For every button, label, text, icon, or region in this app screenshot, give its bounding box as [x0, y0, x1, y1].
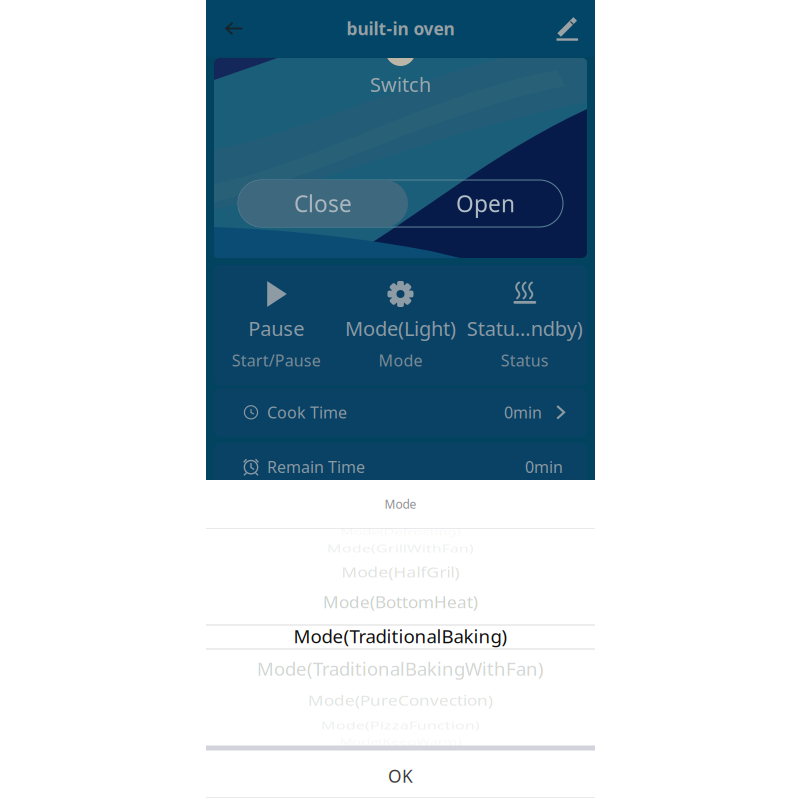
button[interactable]: Mode(Light): [338, 279, 463, 371]
staticText: Mode(KeepWarm): [339, 732, 461, 752]
staticText: Mode(TraditionalBaking): [293, 624, 507, 648]
staticText: Cook Time: [267, 402, 347, 423]
staticText: OK: [388, 764, 413, 787]
staticText: Statu…ndby): [467, 315, 583, 342]
staticText: built-in oven: [346, 17, 454, 40]
staticText: 0min: [525, 456, 563, 477]
staticText: Mode(PureConvection): [308, 688, 493, 711]
staticText: Remain Time: [267, 456, 365, 477]
staticText: Mode(HalfGril): [341, 560, 459, 583]
staticText: Mode(TraditionalBakingWithFan): [257, 657, 544, 681]
button[interactable]: Edit: [541, 0, 595, 57]
button[interactable]: Pause: [214, 279, 338, 371]
staticText: Open: [456, 188, 515, 218]
button[interactable]: OK: [206, 753, 595, 798]
staticText: Mode: [378, 350, 422, 371]
button[interactable]: Cook Time: [214, 388, 587, 437]
staticText: Pause: [248, 315, 304, 342]
staticText: Start/Pause: [232, 350, 321, 371]
staticText: 0min: [504, 402, 542, 423]
staticText: Switch: [370, 71, 431, 98]
button[interactable]: Close: [238, 180, 408, 227]
button[interactable]: Statu…ndby): [463, 279, 587, 371]
staticText: Status: [501, 350, 549, 371]
staticText: Mode(Defrosting): [340, 522, 460, 542]
button[interactable]: Back: [206, 0, 262, 57]
staticText: Mode(BottomHeat): [323, 590, 478, 613]
button[interactable]: Open: [408, 180, 563, 227]
staticText: Mode: [384, 496, 416, 512]
staticText: Close: [294, 188, 352, 218]
staticText: Mode(GrillWithFan): [327, 537, 474, 559]
staticText: Mode(PizzaFunction): [321, 714, 480, 736]
staticText: Mode(Light): [345, 315, 456, 342]
